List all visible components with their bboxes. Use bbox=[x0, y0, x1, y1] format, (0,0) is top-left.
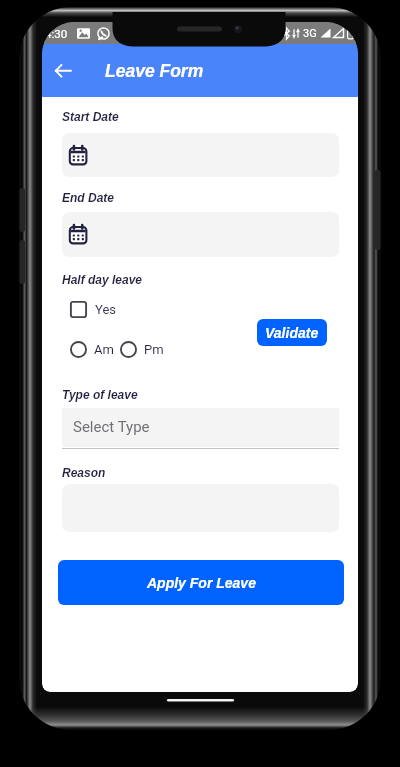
staticText: Select Type bbox=[73, 418, 150, 436]
button[interactable] bbox=[62, 212, 339, 257]
staticText: Start Date bbox=[62, 110, 119, 123]
staticText: Pm bbox=[144, 342, 164, 357]
staticText: Yes bbox=[95, 302, 116, 317]
staticText: End Date bbox=[62, 191, 115, 204]
staticText: Apply For Leave bbox=[147, 575, 256, 591]
staticText: Am bbox=[94, 342, 114, 357]
button[interactable]: Back bbox=[51, 58, 76, 83]
staticText: 3G bbox=[303, 27, 317, 40]
button[interactable]: Pm bbox=[120, 341, 164, 358]
button[interactable]: Pick a date bbox=[68, 224, 88, 244]
staticText: Validate bbox=[265, 325, 319, 341]
button[interactable]: Validate bbox=[257, 319, 327, 346]
button[interactable]: Pick a date bbox=[68, 145, 88, 165]
staticText: Reason bbox=[62, 466, 106, 479]
staticText: Half day leave bbox=[62, 273, 143, 286]
button[interactable]: Apply For Leave bbox=[58, 560, 344, 605]
staticText: Leave Form bbox=[105, 61, 204, 81]
staticText: 4:30 bbox=[45, 27, 68, 40]
button[interactable]: Yes bbox=[70, 301, 116, 318]
button[interactable] bbox=[62, 133, 339, 177]
button[interactable]: Select Type bbox=[62, 408, 339, 447]
button[interactable]: Am bbox=[70, 341, 114, 358]
staticText: Type of leave bbox=[62, 388, 138, 401]
